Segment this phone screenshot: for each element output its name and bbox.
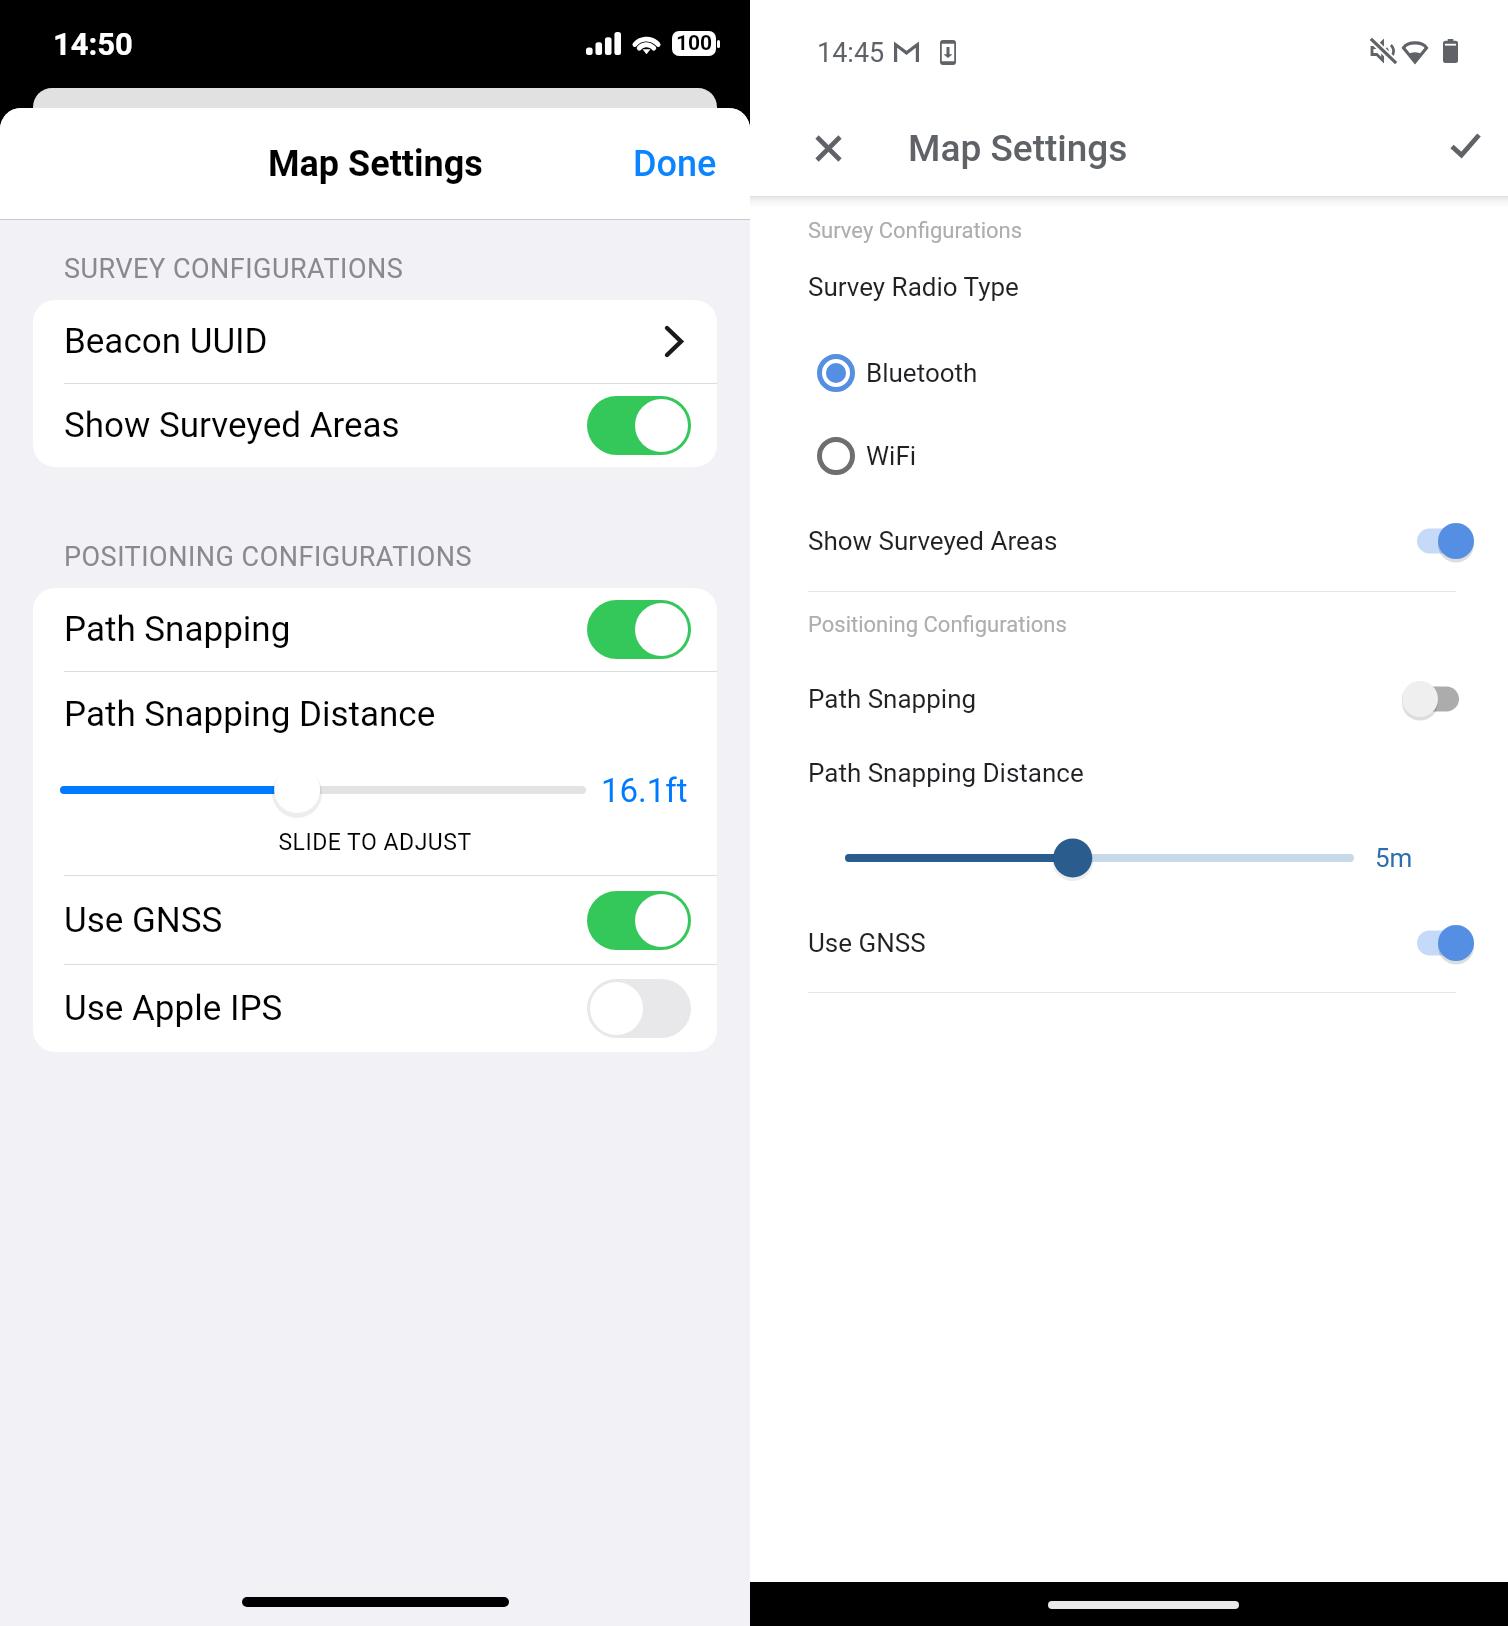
button[interactable]: On [587,600,691,659]
button[interactable]: Close [800,120,857,177]
staticText: 100 [676,31,713,56]
staticText: Path Snapping Distance [64,694,436,735]
button[interactable]: On [1417,521,1474,561]
button[interactable]: On [587,891,691,950]
staticText: POSITIONING CONFIGURATIONS [64,541,473,573]
button[interactable]: Off [587,979,691,1038]
button[interactable]: Off [1402,679,1459,719]
staticText: Survey Configurations [808,218,1023,244]
staticText: Use GNSS [64,900,223,941]
staticText: Map Settings [268,143,483,185]
staticText: Path Snapping [64,609,291,650]
staticText: WiFi [866,441,917,471]
staticText: Path Snapping [808,684,977,714]
button[interactable]: Beacon UUID [33,300,717,383]
staticText: Show Surveyed Areas [64,405,400,446]
staticText: Map Settings [908,127,1128,170]
staticText: 5m [1375,843,1413,873]
button[interactable]: On [587,396,691,455]
staticText: 14:50 [53,26,133,62]
button[interactable]: Use GNSS [750,911,1508,975]
staticText: Path Snapping Distance [808,758,1084,788]
button[interactable]: Bluetooth [750,342,1508,404]
staticText: SLIDE TO ADJUST [278,829,472,856]
staticText: Done [633,143,717,185]
staticText: SURVEY CONFIGURATIONS [64,253,404,285]
other: Open [665,326,683,357]
staticText: 14:45 [817,37,885,69]
button[interactable]: WiFi [750,425,1508,487]
button[interactable]: Done [603,125,750,203]
staticText: Bluetooth [866,358,978,388]
staticText: Use Apple IPS [64,988,283,1029]
staticText: Use GNSS [808,928,926,958]
button[interactable]: On [1417,923,1474,963]
button[interactable]: Show Surveyed Areas [750,509,1508,573]
button[interactable]: Path Snapping [750,667,1508,731]
staticText: Survey Radio Type [808,272,1019,302]
staticText: Show Surveyed Areas [808,526,1058,556]
staticText: Beacon UUID [64,321,268,362]
staticText: 16.1ft [601,771,688,810]
button[interactable]: Confirm [1437,116,1494,173]
staticText: Positioning Configurations [808,612,1067,638]
